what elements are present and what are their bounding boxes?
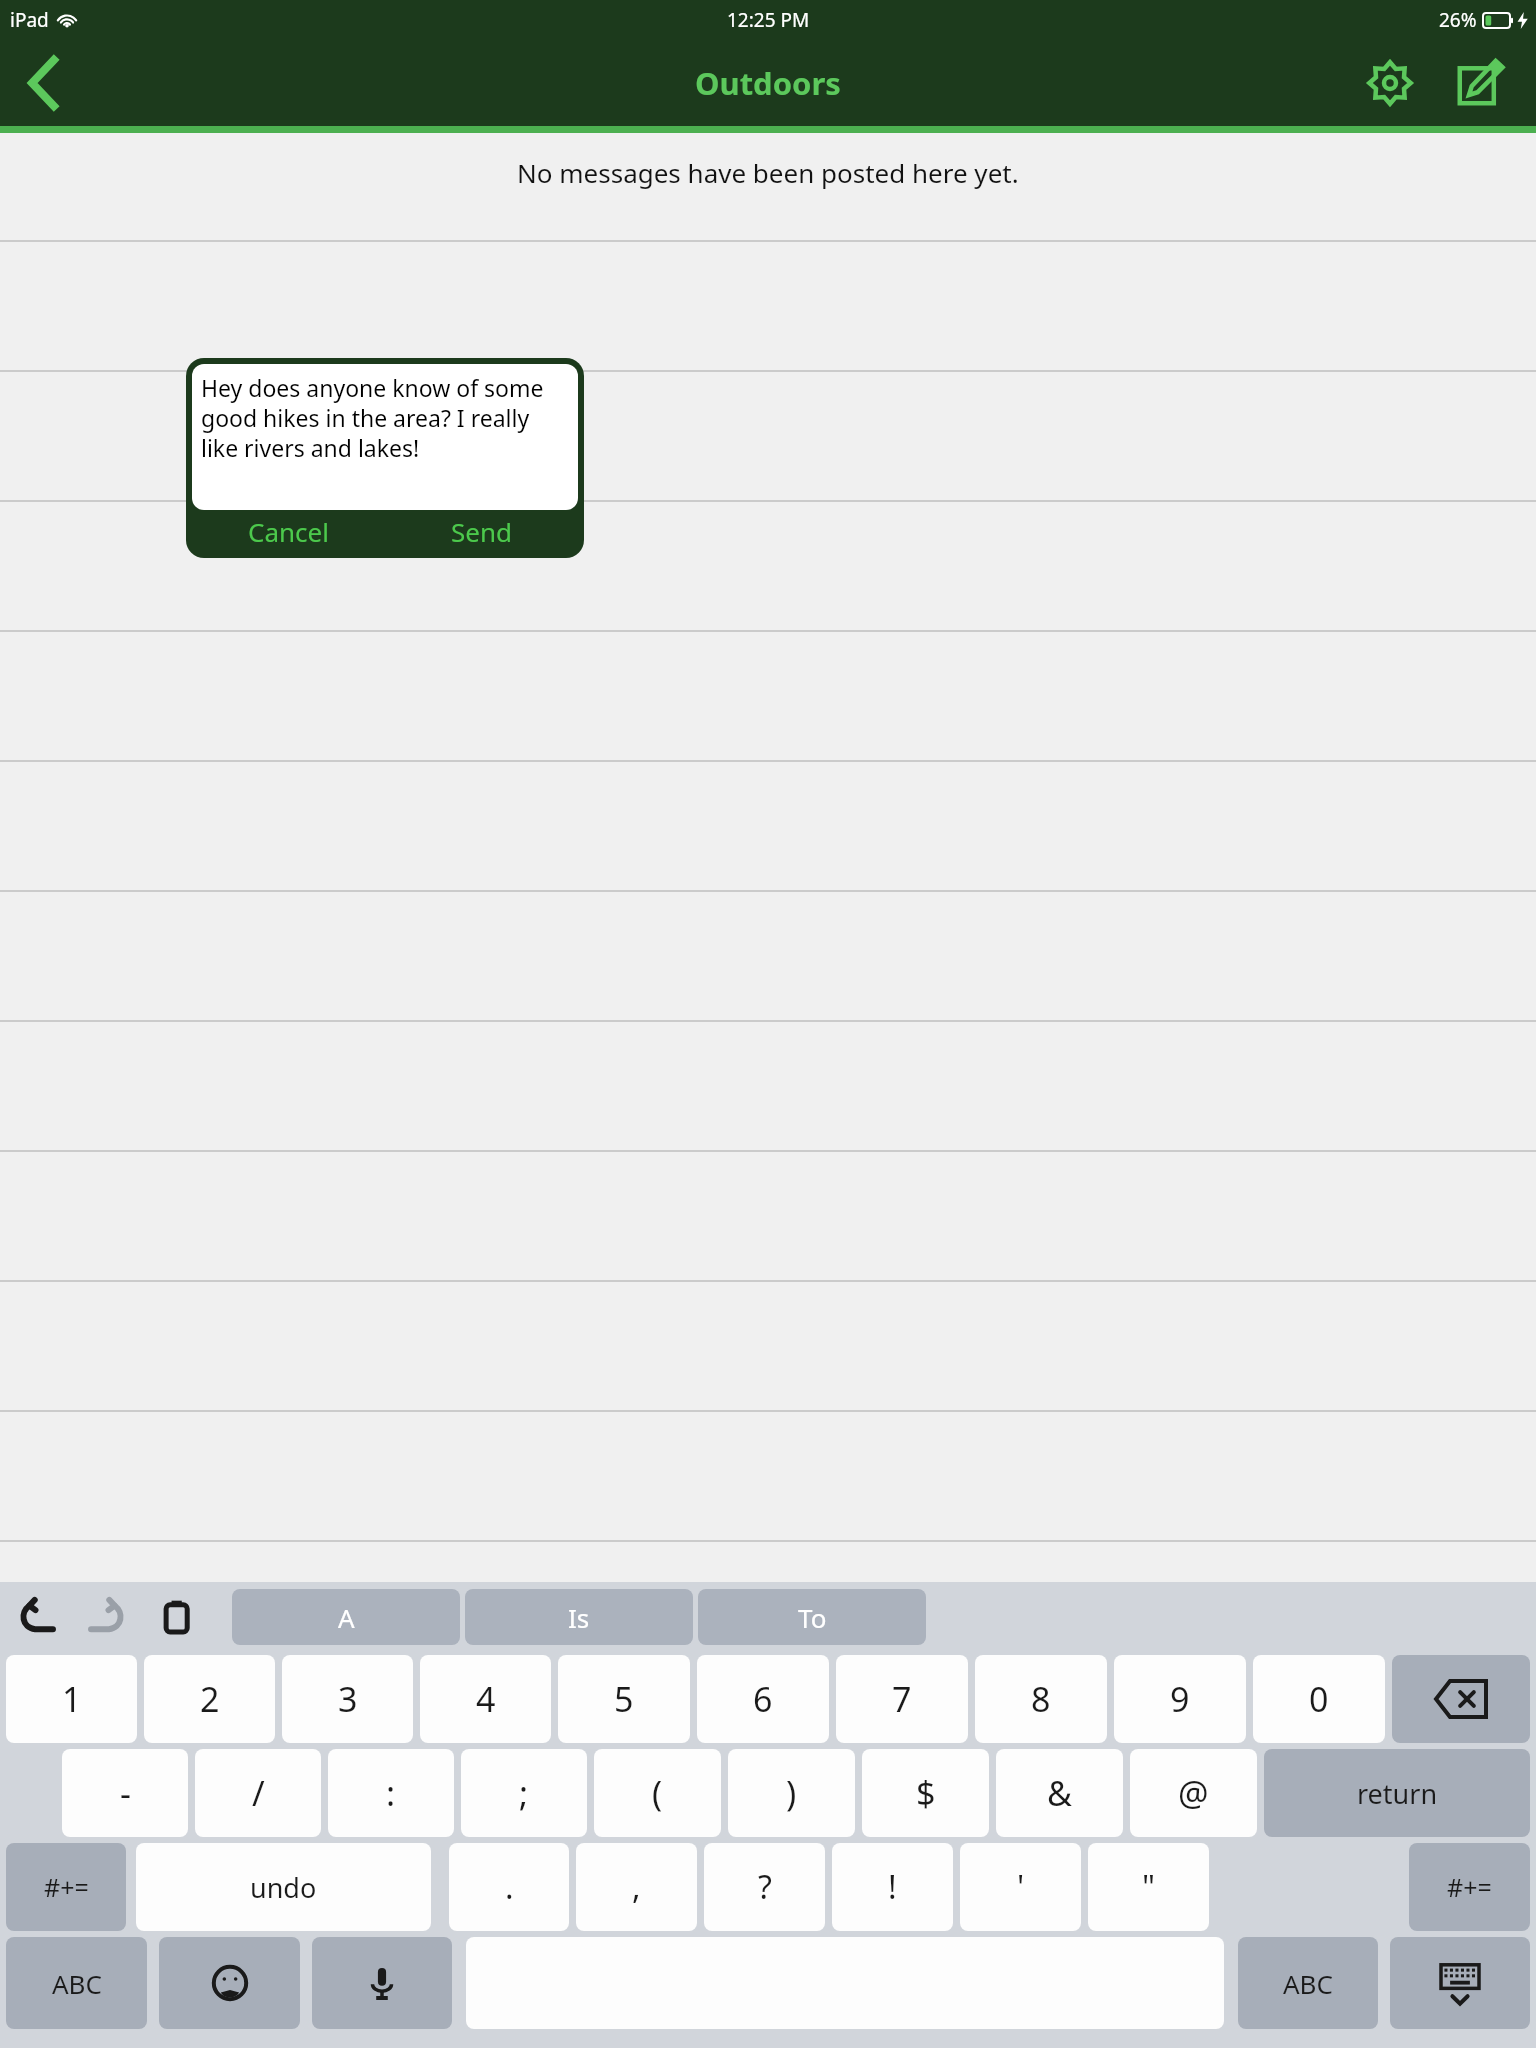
staticText: ,: [632, 1865, 641, 1909]
button[interactable]: &: [996, 1749, 1123, 1837]
button[interactable]: 2: [144, 1655, 275, 1743]
staticText: #+=: [44, 1870, 89, 1904]
button[interactable]: Paste: [154, 1594, 200, 1640]
button[interactable]: ABC: [6, 1937, 147, 2029]
button[interactable]: 4: [420, 1655, 551, 1743]
staticText: ': [1017, 1865, 1025, 1909]
staticText: ?: [758, 1865, 772, 1909]
button[interactable]: Cancel: [192, 510, 385, 552]
staticText: A: [338, 1600, 355, 1635]
staticText: .: [505, 1865, 514, 1909]
button[interactable]: Hide keyboard: [1390, 1937, 1530, 2029]
staticText: undo: [250, 1869, 317, 1906]
button[interactable]: ABC: [1238, 1937, 1378, 2029]
button[interactable]: ?: [704, 1843, 825, 1931]
button[interactable]: 7: [836, 1655, 968, 1743]
button[interactable]: Redo: [84, 1594, 130, 1640]
button[interactable]: Settings: [1354, 47, 1426, 119]
button[interactable]: 9: [1114, 1655, 1246, 1743]
button[interactable]: $: [862, 1749, 989, 1837]
staticText: ;: [519, 1770, 529, 1816]
button[interactable]: ,: [576, 1843, 697, 1931]
button[interactable]: Undo: [14, 1594, 60, 1640]
staticText: 3: [338, 1676, 358, 1722]
button[interactable]: ;: [461, 1749, 587, 1837]
button[interactable]: (: [594, 1749, 721, 1837]
staticText: ABC: [52, 1966, 102, 2001]
button[interactable]: Is: [465, 1589, 693, 1645]
button[interactable]: 5: [558, 1655, 690, 1743]
button[interactable]: Backspace: [1392, 1655, 1530, 1743]
button[interactable]: undo: [136, 1843, 431, 1931]
button[interactable]: /: [195, 1749, 321, 1837]
button[interactable]: !: [832, 1843, 953, 1931]
button[interactable]: ': [960, 1843, 1081, 1931]
button[interactable]: Hey does anyone know of some good hikes …: [201, 372, 569, 502]
staticText: /: [252, 1770, 265, 1816]
staticText: iPad: [10, 7, 49, 33]
staticText: 26%: [1439, 7, 1477, 33]
staticText: #+=: [1447, 1870, 1492, 1904]
staticText: ): [786, 1770, 797, 1816]
staticText: :: [386, 1770, 396, 1816]
button[interactable]: Dictate: [312, 1937, 452, 2029]
staticText: No messages have been posted here yet.: [517, 155, 1019, 190]
button[interactable]: Send: [385, 510, 578, 552]
staticText: ABC: [1283, 1966, 1333, 2001]
button[interactable]: #+=: [1409, 1843, 1530, 1931]
staticText: -: [120, 1770, 131, 1816]
staticText: 0: [1309, 1676, 1329, 1722]
staticText: (: [652, 1770, 663, 1816]
staticText: Is: [568, 1600, 590, 1635]
button[interactable]: 0: [1253, 1655, 1385, 1743]
button[interactable]: 3: [282, 1655, 413, 1743]
button[interactable]: To: [698, 1589, 926, 1645]
staticText: 4: [476, 1676, 496, 1722]
staticText: 9: [1170, 1676, 1190, 1722]
button[interactable]: @: [1130, 1749, 1257, 1837]
staticText: Hey does anyone know of some good hikes …: [201, 372, 569, 463]
button[interactable]: Compose: [1444, 47, 1516, 119]
staticText: !: [888, 1865, 897, 1909]
button[interactable]: 6: [697, 1655, 829, 1743]
staticText: 6: [753, 1676, 773, 1722]
staticText: 12:25 PM: [727, 7, 810, 33]
button[interactable]: ): [728, 1749, 855, 1837]
button[interactable]: 1: [6, 1655, 137, 1743]
staticText: To: [798, 1600, 827, 1635]
staticText: 1: [62, 1676, 82, 1722]
button[interactable]: 8: [975, 1655, 1107, 1743]
button[interactable]: .: [449, 1843, 569, 1931]
staticText: $: [916, 1770, 936, 1816]
staticText: Outdoors: [695, 62, 841, 104]
staticText: ": [1142, 1865, 1156, 1909]
button[interactable]: A: [232, 1589, 460, 1645]
staticText: return: [1357, 1775, 1438, 1812]
button[interactable]: Back: [0, 40, 86, 126]
button[interactable]: :: [328, 1749, 454, 1837]
staticText: @: [1178, 1770, 1209, 1816]
button[interactable]: ": [1088, 1843, 1209, 1931]
staticText: &: [1047, 1770, 1072, 1816]
button[interactable]: Emoji: [159, 1937, 300, 2029]
staticText: 8: [1031, 1676, 1051, 1722]
staticText: 2: [200, 1676, 220, 1722]
button[interactable]: -: [62, 1749, 188, 1837]
button[interactable]: return: [1264, 1749, 1530, 1837]
button[interactable]: #+=: [6, 1843, 126, 1931]
staticText: 7: [892, 1676, 912, 1722]
staticText: 5: [614, 1676, 634, 1722]
staticText: Send: [451, 514, 512, 549]
staticText: Cancel: [248, 514, 329, 549]
